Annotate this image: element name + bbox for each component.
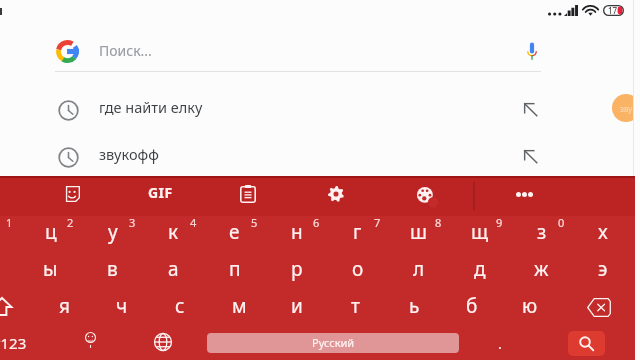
staticText: 9 [496,215,503,230]
staticText: ж [534,256,549,282]
staticText: е [229,219,240,245]
staticText: Поиск... [99,41,152,60]
staticText: . [498,334,502,353]
button[interactable]: с [151,290,209,327]
button[interactable]: Emoji [67,327,123,360]
staticText: с [175,293,185,319]
staticText: ч [116,293,128,319]
button[interactable]: э [572,253,633,290]
staticText: 0 [558,215,565,230]
button[interactable]: м [210,290,268,327]
button[interactable]: г [327,216,388,253]
staticText: и [291,293,303,319]
button[interactable]: щ [449,216,510,253]
button[interactable]: о [327,253,388,290]
staticText: 2 [67,215,74,230]
staticText: э [598,256,608,282]
staticText: д [474,256,486,282]
staticText: ш [410,219,427,245]
staticText: т [351,293,360,319]
staticText: у [108,219,118,245]
staticText: а [168,256,179,282]
button[interactable]: р [266,253,327,290]
button[interactable]: ж [511,253,572,290]
staticText: к [168,219,179,245]
button[interactable]: Profile [612,94,640,122]
button[interactable]: Settings [306,176,366,216]
staticText: п [229,256,241,282]
button[interactable]: Themes [394,176,454,216]
staticText: 8 [435,215,442,230]
staticText: о [352,256,364,282]
staticText: звук [620,103,637,114]
button[interactable]: Русский [207,333,459,353]
staticText: б [466,293,478,319]
staticText: 4 [190,215,197,230]
button[interactable]: Voice search [514,33,550,69]
staticText: г [353,219,362,245]
button[interactable]: ц [20,216,81,253]
button[interactable]: п [204,253,265,290]
staticText: 17 [608,5,618,16]
button[interactable]: й [0,216,20,253]
button[interactable]: ы [20,253,81,290]
staticText: 7 [374,215,381,230]
staticText: в [107,256,118,282]
button[interactable]: л [388,253,449,290]
button[interactable]: и [268,290,326,327]
button[interactable]: ?123 [0,327,41,360]
staticText: ю [522,293,538,319]
staticText: 1 [6,215,13,230]
staticText: ц [45,219,57,245]
staticText: звукофф [99,144,159,164]
staticText: я [59,293,70,319]
staticText: 6 [313,215,320,230]
button[interactable]: GIF [130,176,190,216]
button[interactable]: Search [568,331,605,356]
staticText: л [413,256,425,282]
staticText: Русский [312,335,355,350]
button[interactable]: Change language [135,327,191,360]
staticText: з [537,219,547,245]
button[interactable]: з [511,216,572,253]
button[interactable]: т [326,290,384,327]
button[interactable]: к [143,216,204,253]
button[interactable]: More options [489,176,559,216]
button[interactable]: н [266,216,327,253]
staticText: р [291,256,303,282]
staticText: ь [409,293,420,319]
button[interactable]: я [35,290,93,327]
button[interactable]: у [82,216,143,253]
staticText: м [232,293,247,319]
button[interactable]: Stickers [42,176,102,216]
button[interactable]: б [443,290,501,327]
staticText: ?123 [0,333,27,353]
button[interactable]: звукофф [0,135,600,180]
button[interactable]: ь [385,290,443,327]
staticText: 3 [129,215,136,230]
staticText: н [291,219,303,245]
button[interactable]: ч [93,290,151,327]
button[interactable]: . [470,327,530,360]
staticText: где найти елку [99,97,203,117]
button[interactable]: где найти елку [0,88,600,133]
staticText: х [598,219,608,245]
staticText: щ [471,219,489,245]
button[interactable]: Backspace [565,290,635,327]
button[interactable]: Shift [0,290,35,327]
button[interactable]: д [449,253,510,290]
staticText: ы [43,256,58,282]
button[interactable]: ш [388,216,449,253]
button[interactable]: х [572,216,633,253]
staticText: 5 [251,215,258,230]
button[interactable]: е [204,216,265,253]
staticText: GIF [148,183,173,202]
button[interactable]: Clipboard [218,176,278,216]
button[interactable]: в [82,253,143,290]
button[interactable]: а [143,253,204,290]
button[interactable]: ю [501,290,559,327]
